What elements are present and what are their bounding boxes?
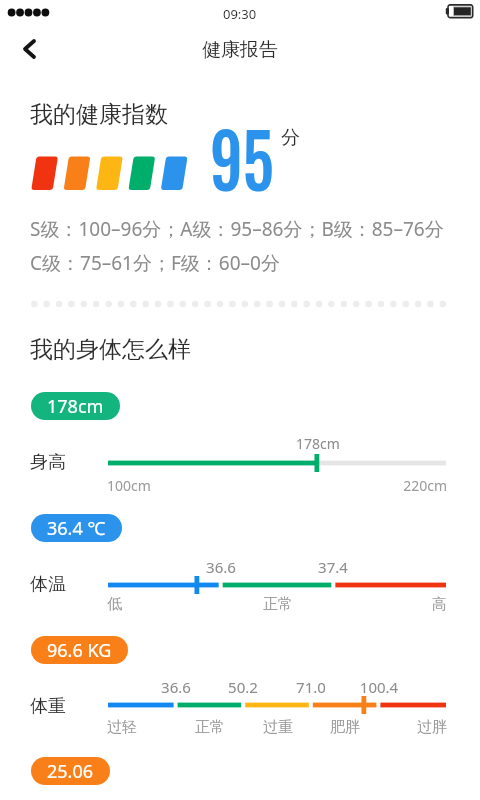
button[interactable]: 96.6 KG [31, 636, 128, 664]
button[interactable]: Back [6, 27, 50, 71]
staticText: 71.0 [251, 677, 371, 697]
staticText: 96.6 KG [47, 638, 112, 663]
staticText: 95 [210, 103, 275, 213]
staticText: 低 [107, 595, 122, 614]
staticText: 36.6 [161, 557, 281, 577]
staticText: 36.4 ℃ [47, 516, 106, 541]
staticText: 178cm [258, 434, 378, 453]
staticText: C级：75–61分；F级：60–0分 [30, 250, 280, 276]
staticText: 09:30 [223, 5, 257, 23]
staticText: 正常 [218, 595, 338, 614]
staticText: 正常 [150, 718, 270, 737]
staticText: 过重 [218, 718, 338, 737]
staticText: 100.4 [319, 677, 439, 697]
staticText: 健康报告 [202, 38, 278, 62]
staticText: 体重 [30, 695, 66, 718]
staticText: 我的健康指数 [30, 100, 168, 129]
staticText: 身高 [30, 451, 66, 474]
button[interactable]: 36.4 ℃ [31, 514, 122, 542]
staticText: 我的身体怎么样 [30, 335, 191, 364]
staticText: 体温 [30, 573, 66, 596]
staticText: 37.4 [273, 557, 393, 577]
staticText: 178cm [47, 394, 104, 419]
staticText: 25.06 [47, 759, 94, 784]
staticText: S级：100–96分；A级：95–86分；B级：85–76分 [30, 216, 444, 242]
staticText: 分 [281, 126, 300, 150]
staticText: 50.2 [183, 677, 303, 697]
staticText: 100cm [107, 476, 151, 495]
staticText: 过轻 [107, 718, 137, 737]
staticText: 220cm [327, 476, 447, 495]
staticText: 过胖 [327, 718, 447, 737]
button[interactable]: 178cm [31, 392, 120, 420]
staticText: 高 [327, 595, 447, 614]
staticText: 36.6 [116, 677, 236, 697]
button[interactable]: 25.06 [31, 757, 110, 785]
staticText: 肥胖 [285, 718, 405, 737]
